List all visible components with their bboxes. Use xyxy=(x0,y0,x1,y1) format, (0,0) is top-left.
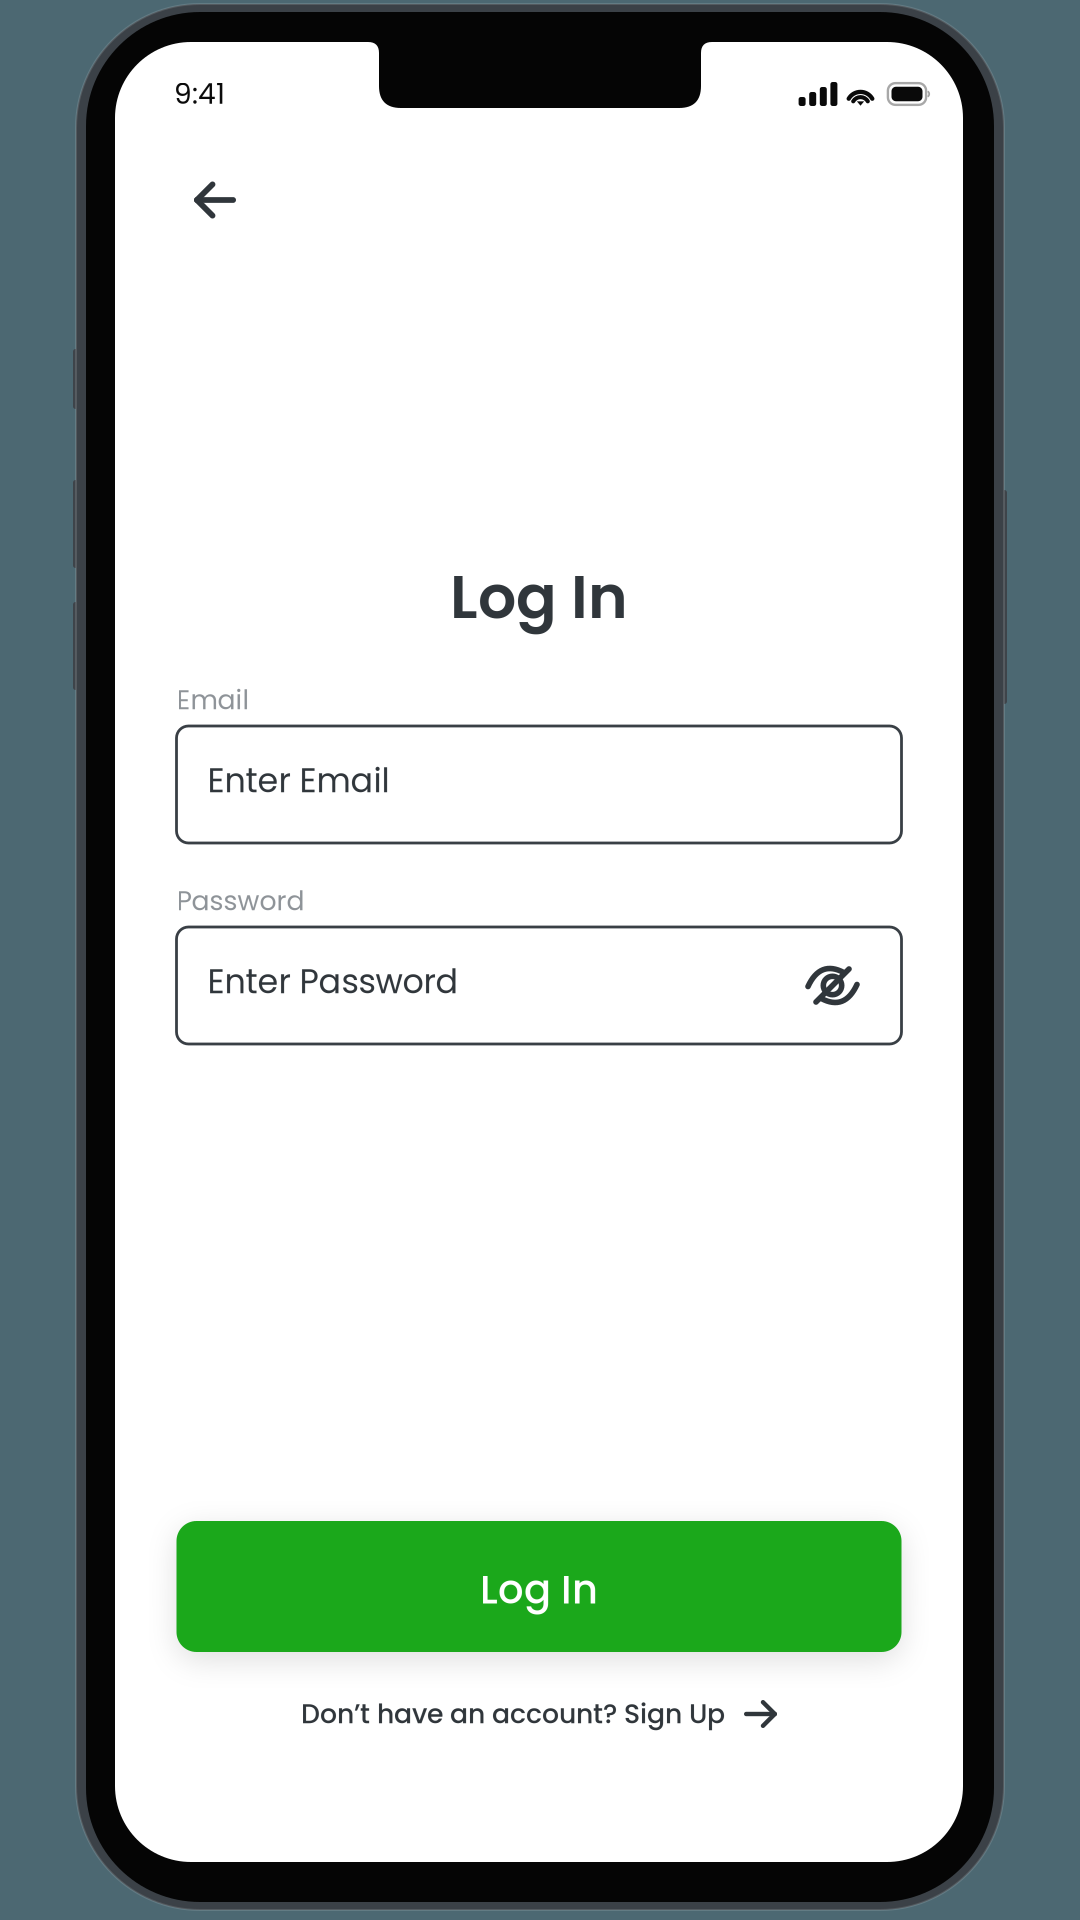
button[interactable]: Don’t have an account? Sign Up xyxy=(176,1688,901,1740)
staticText: Email xyxy=(176,681,249,719)
staticText: Log In xyxy=(450,555,628,639)
staticText: Enter Email xyxy=(207,757,389,804)
button[interactable]: Back xyxy=(171,156,259,244)
staticText: 9:41 xyxy=(174,74,225,114)
staticText: Enter Password xyxy=(207,958,458,1005)
staticText: Log In xyxy=(480,1561,598,1617)
staticText: Password xyxy=(176,882,304,920)
button[interactable]: Show password xyxy=(785,928,879,1043)
staticText: Don’t have an account? Sign Up xyxy=(301,1695,725,1733)
button[interactable]: Log In xyxy=(176,1521,901,1652)
